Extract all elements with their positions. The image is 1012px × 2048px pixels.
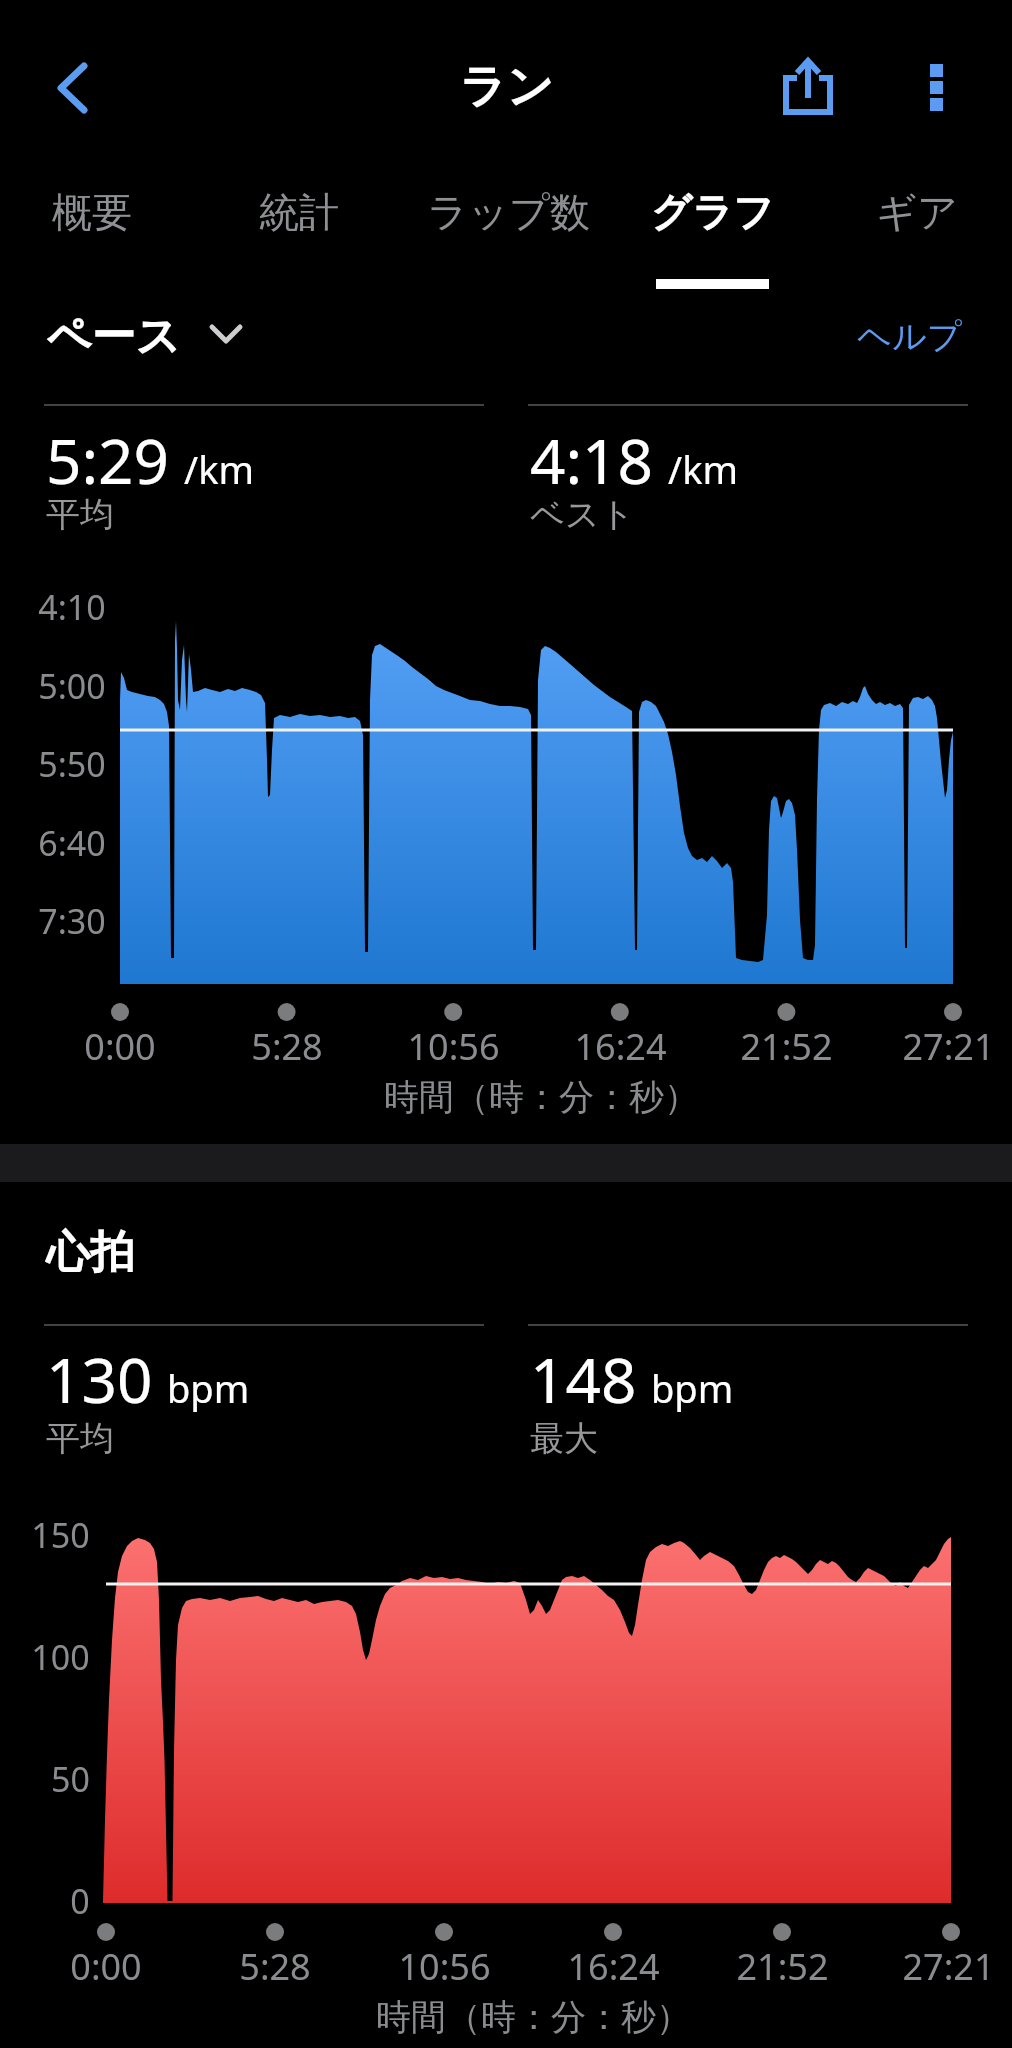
staticText: 16:24 [574, 1022, 667, 1071]
staticText: ペース [46, 309, 181, 364]
staticText: 5:50 [38, 741, 106, 787]
staticText: 5:28 [239, 1942, 311, 1991]
staticText: ラン [459, 58, 554, 116]
staticText: 4:18 [530, 418, 654, 502]
staticText: 平均 [46, 1417, 114, 1460]
staticText: グラフ [651, 187, 774, 237]
button[interactable]: ラップ数 [398, 162, 618, 262]
button[interactable] [40, 52, 110, 122]
staticText: 10:56 [398, 1942, 491, 1991]
staticText: 6:40 [38, 820, 106, 866]
staticText: ベスト [530, 493, 635, 536]
button[interactable] [772, 44, 844, 124]
staticText: 7:30 [38, 898, 106, 944]
staticText: 最大 [530, 1417, 598, 1460]
staticText: 統計 [259, 187, 339, 237]
staticText: 心拍 [46, 1225, 134, 1280]
button[interactable] [908, 44, 968, 124]
staticText: ヘルプ [857, 315, 962, 358]
staticText: 27:21 [902, 1022, 995, 1071]
button[interactable]: グラフ [612, 162, 812, 262]
staticText: 148 [530, 1337, 637, 1421]
staticText: 0 [70, 1878, 90, 1924]
staticText: 時間（時：分：秒） [376, 1995, 691, 2039]
staticText: 0:00 [70, 1942, 142, 1991]
staticText: /km [184, 443, 254, 495]
staticText: bpm [651, 1362, 734, 1414]
staticText: /km [668, 443, 738, 495]
staticText: 5:29 [46, 418, 170, 502]
button[interactable]: 概要 [2, 162, 182, 262]
staticText: ラップ数 [427, 187, 590, 237]
staticText: bpm [167, 1362, 250, 1414]
staticText: ギア [876, 187, 958, 237]
staticText: 27:21 [902, 1942, 995, 1991]
staticText: 150 [31, 1512, 90, 1558]
staticText: 100 [31, 1634, 90, 1680]
staticText: 5:28 [251, 1022, 323, 1071]
staticText: 10:56 [407, 1022, 500, 1071]
staticText: 130 [46, 1337, 153, 1421]
staticText: 4:10 [38, 584, 106, 630]
staticText: 時間（時：分：秒） [384, 1075, 699, 1119]
staticText: 0:00 [84, 1022, 156, 1071]
staticText: 21:52 [736, 1942, 829, 1991]
staticText: 平均 [46, 493, 114, 536]
staticText: 50 [51, 1756, 90, 1802]
button[interactable]: 統計 [209, 162, 389, 262]
button[interactable]: ペース [46, 291, 306, 381]
staticText: 16:24 [567, 1942, 660, 1991]
button[interactable]: ヘルプ [662, 291, 962, 381]
staticText: 概要 [52, 187, 132, 237]
button[interactable]: ギア [837, 162, 997, 262]
staticText: 5:00 [38, 663, 106, 709]
staticText: 21:52 [740, 1022, 833, 1071]
